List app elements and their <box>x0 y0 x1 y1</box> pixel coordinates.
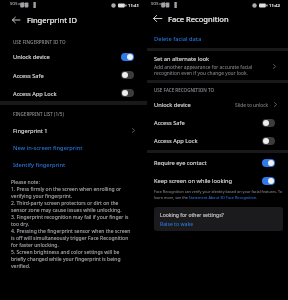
button[interactable] <box>0 66 147 84</box>
staticText: Slide to unlock <box>235 102 269 109</box>
button[interactable] <box>141 114 288 132</box>
staticText: Access Safe <box>13 72 44 80</box>
button[interactable]: Switch off <box>121 89 134 97</box>
staticText: Access App Lock <box>154 137 198 145</box>
staticText: 11:42 <box>269 2 280 8</box>
button[interactable] <box>0 84 147 102</box>
button[interactable]: Switch on <box>262 177 275 185</box>
staticText: Fingerprint ID <box>27 15 77 25</box>
staticText: Require eye contact <box>154 159 207 167</box>
staticText: too dry. <box>11 221 30 228</box>
staticText: Unlock device <box>154 101 191 109</box>
staticText: 5. Screen brightness and color settings … <box>11 249 120 256</box>
button[interactable]: Back <box>149 10 166 27</box>
staticText: Delete facial data <box>154 35 202 43</box>
staticText: Please note: <box>11 179 40 186</box>
staticText: sensor zone may cause issues while unloc… <box>11 207 122 214</box>
staticText: Access App Lock <box>13 90 57 98</box>
staticText: Unlock device <box>13 53 50 61</box>
button[interactable] <box>0 139 147 156</box>
staticText: USE FACE RECOGNITION TO <box>154 87 215 93</box>
button[interactable]: Switch on <box>262 159 275 167</box>
staticText: verifying your fingerprint. <box>11 193 73 200</box>
staticText: SOS only <box>151 1 168 6</box>
staticText: recognition even if you change your look… <box>154 70 248 77</box>
button[interactable] <box>141 96 288 113</box>
staticText: 3. Fingerprint recognition may fail if y… <box>11 214 129 221</box>
button[interactable] <box>141 31 288 47</box>
staticText: Set an alternate look <box>154 55 210 63</box>
button[interactable] <box>154 207 283 231</box>
button[interactable]: Switch off <box>262 119 275 127</box>
staticText: Fingerprint 1 <box>13 127 48 135</box>
staticText: Identify fingerprint <box>13 161 66 169</box>
staticText: Face Recognition can verify your identit… <box>154 189 283 194</box>
staticText: 4. Pressing the fingerprint sensor when … <box>11 228 131 235</box>
button[interactable] <box>0 121 147 138</box>
staticText: 2. Third-party screen protectors or dirt… <box>11 200 119 207</box>
button[interactable]: Switch off <box>121 71 134 79</box>
staticText: for faster unlocking. <box>11 242 59 249</box>
button[interactable] <box>0 156 147 173</box>
staticText: Looking for other settings? <box>160 212 224 219</box>
button[interactable]: Switch on <box>121 53 134 61</box>
staticText: briefly changed while your fingerprint i… <box>11 256 121 263</box>
button[interactable] <box>141 53 288 79</box>
staticText: USE FINGERPRINT ID TO <box>13 39 66 45</box>
button[interactable]: Switch off <box>262 137 275 145</box>
staticText: 1. Press firmly on the screen when enrol… <box>11 186 122 193</box>
button[interactable] <box>0 48 147 66</box>
staticText: Face Recognition <box>168 14 229 24</box>
staticText: FINGERPRINT LIST (1/5) <box>13 111 64 117</box>
staticText: New in-screen fingerprint <box>13 144 83 152</box>
staticText: learn more, see the Statement About 3D F… <box>154 195 258 200</box>
staticText: Add another appearance for accurate faci… <box>154 64 253 71</box>
staticText: verified. <box>11 263 31 270</box>
staticText: SOS only <box>10 1 27 6</box>
staticText: Raise to wake <box>160 221 194 228</box>
staticText: Access Safe <box>154 119 185 127</box>
button[interactable] <box>141 132 288 150</box>
staticText: is off will simultaneously trigger Face … <box>11 235 129 242</box>
staticText: Keep screen on while looking <box>154 177 232 185</box>
button[interactable] <box>141 153 288 171</box>
staticText: 11:41 <box>128 2 139 8</box>
button[interactable] <box>141 172 288 190</box>
button[interactable]: Back <box>8 12 24 28</box>
